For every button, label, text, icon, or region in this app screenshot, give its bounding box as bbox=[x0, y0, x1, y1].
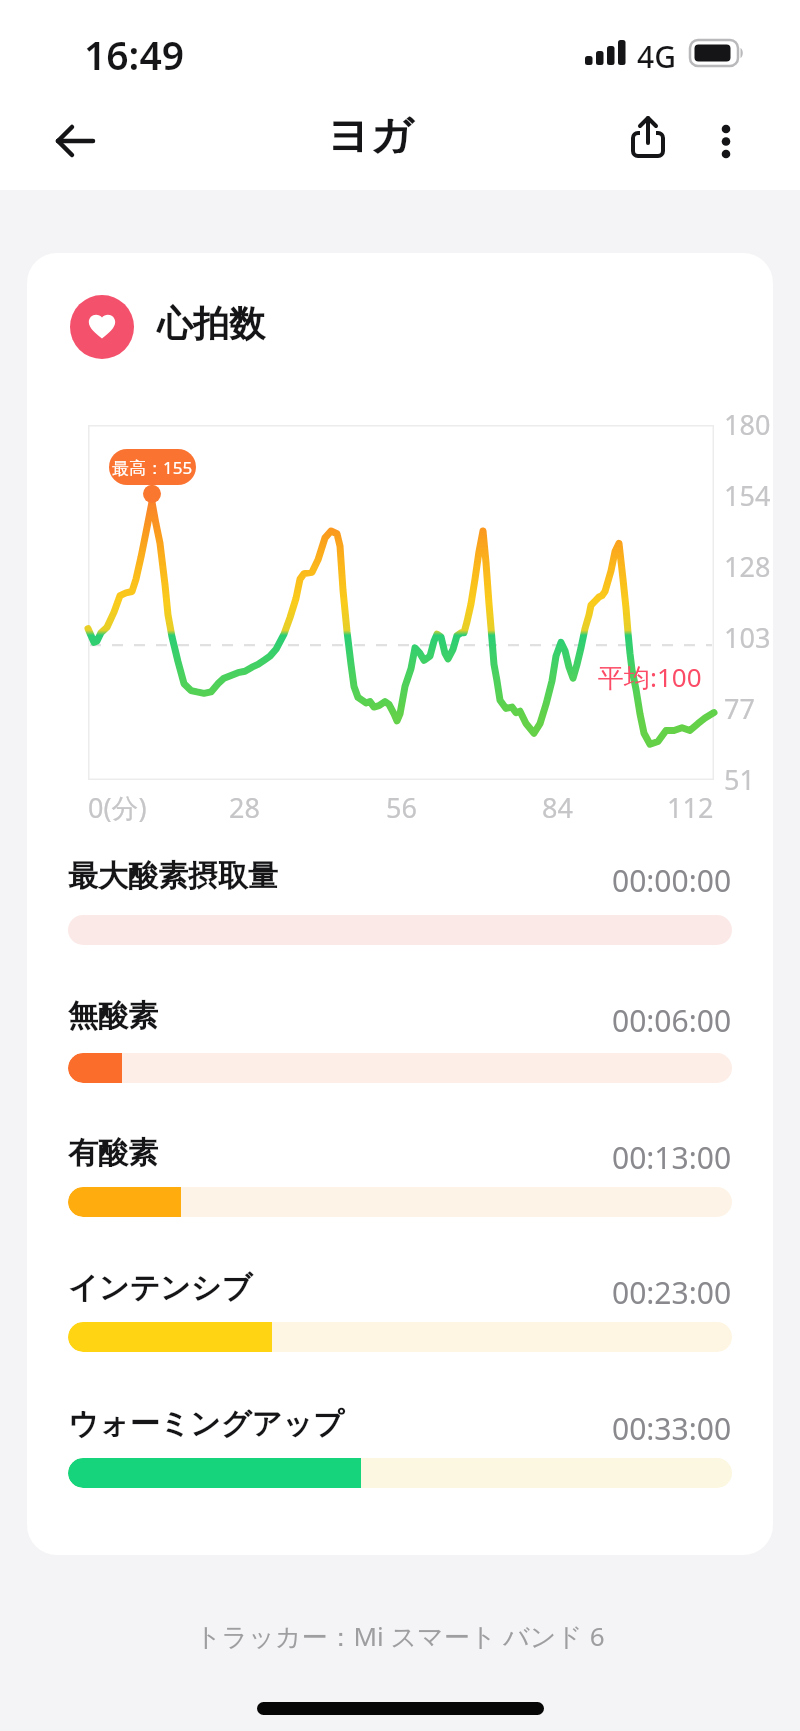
button[interactable] bbox=[42, 120, 108, 166]
staticText: 00:00:00 bbox=[612, 860, 732, 901]
staticText: 0(分) bbox=[88, 789, 147, 826]
staticText: 51 bbox=[724, 761, 755, 798]
staticText: 77 bbox=[724, 690, 755, 727]
staticText: 84 bbox=[542, 789, 573, 826]
staticText: 00:33:00 bbox=[612, 1408, 732, 1449]
staticText: 有酸素 bbox=[68, 1134, 158, 1172]
staticText: 28 bbox=[229, 789, 260, 826]
staticText: 心拍数 bbox=[157, 301, 265, 346]
staticText: 無酸素 bbox=[68, 997, 158, 1035]
staticText: インテンシブ bbox=[68, 1269, 253, 1307]
staticText: 128 bbox=[724, 548, 771, 585]
staticText: トラッカー：Mi スマート バンド 6 bbox=[195, 1618, 605, 1654]
staticText: 16:49 bbox=[84, 28, 184, 81]
staticText: 00:06:00 bbox=[612, 1000, 732, 1041]
staticText: 154 bbox=[724, 477, 771, 514]
staticText: 00:13:00 bbox=[612, 1137, 732, 1178]
staticText: ウォーミングアップ bbox=[68, 1405, 344, 1443]
staticText: 112 bbox=[667, 789, 714, 826]
staticText: 56 bbox=[386, 789, 417, 826]
staticText: 最大酸素摂取量 bbox=[68, 857, 278, 895]
staticText: 最高：155 bbox=[112, 456, 193, 479]
button[interactable] bbox=[622, 108, 674, 168]
staticText: 180 bbox=[724, 406, 771, 443]
staticText: 4G bbox=[637, 36, 676, 77]
button[interactable] bbox=[706, 115, 746, 165]
staticText: 平均:100 bbox=[598, 659, 702, 695]
staticText: 103 bbox=[724, 619, 771, 656]
staticText: ヨガ bbox=[327, 110, 413, 163]
staticText: 00:23:00 bbox=[612, 1272, 732, 1313]
